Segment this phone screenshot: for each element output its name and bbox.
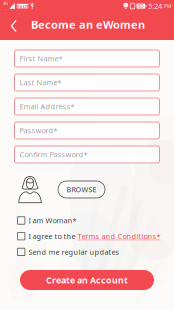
- staticText: Become an eWomen: [31, 17, 145, 32]
- staticText: Email Address*: [19, 101, 74, 111]
- staticText: VoLTE: [17, 3, 28, 9]
- staticText: I agree to the: [28, 231, 77, 241]
- staticText: ··: [4, 6, 6, 12]
- staticText: First Name*: [19, 53, 62, 63]
- button[interactable]: Back: [3, 15, 25, 37]
- staticText: Password*: [19, 125, 57, 135]
- staticText: BROWSE: [66, 185, 96, 194]
- staticText: PM: [164, 3, 171, 9]
- button[interactable]: I am Woman*: [17, 215, 167, 225]
- staticText: Confirm Password*: [19, 149, 87, 159]
- button[interactable]: I agree to the: [17, 231, 167, 241]
- staticText: 5:24: [148, 1, 162, 11]
- button[interactable]: Last Name*: [14, 74, 159, 91]
- staticText: Send me regular updates: [28, 247, 119, 257]
- button[interactable]: Confirm Password*: [14, 146, 159, 163]
- staticText: Create an Account: [46, 274, 128, 286]
- staticText: Last Name*: [19, 77, 61, 87]
- button[interactable]: Send me regular updates: [17, 247, 167, 257]
- button[interactable]: Password*: [14, 122, 159, 139]
- button[interactable]: First Name*: [14, 50, 159, 67]
- button[interactable]: Email Address*: [14, 98, 159, 115]
- staticText: 4G: [3, 0, 8, 6]
- button[interactable]: Create an Account: [20, 270, 154, 290]
- staticText: Terms and Conditions*: [77, 231, 160, 241]
- staticText: 85: [138, 3, 144, 9]
- staticText: I am Woman*: [28, 215, 76, 225]
- button[interactable]: BROWSE: [58, 181, 105, 198]
